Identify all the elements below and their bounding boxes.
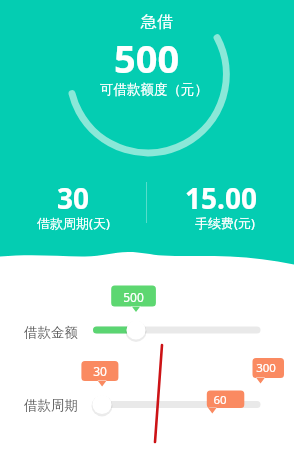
- staticText: 500: [123, 289, 144, 305]
- staticText: 30: [57, 179, 90, 217]
- staticText: 急借: [141, 12, 173, 32]
- staticText: 借款周期: [24, 397, 78, 412]
- staticText: 15.00: [185, 179, 257, 217]
- staticText: 300: [256, 360, 276, 376]
- staticText: 500: [114, 32, 180, 84]
- staticText: 借款金额: [24, 324, 78, 339]
- button[interactable]: 借款金额: [24, 324, 78, 339]
- staticText: 手续费(元): [195, 214, 255, 232]
- button[interactable]: 借款周期: [24, 397, 78, 412]
- button[interactable]: 30: [0, 179, 147, 231]
- button[interactable]: 急借: [122, 11, 192, 33]
- staticText: 60: [213, 392, 227, 408]
- button[interactable]: 15.00: [147, 179, 294, 231]
- staticText: 借款周期(天): [37, 214, 110, 232]
- staticText: 30: [93, 363, 107, 379]
- staticText: 可借款额度（元）: [100, 81, 208, 98]
